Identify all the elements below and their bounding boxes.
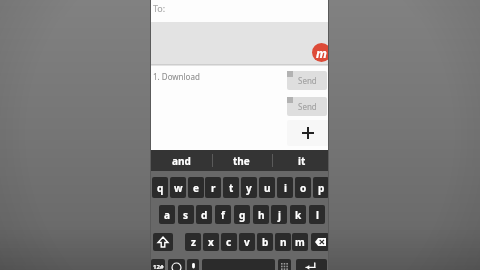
staticText: e	[193, 181, 199, 195]
staticText: p	[318, 181, 325, 195]
button[interactable]: h	[253, 205, 269, 224]
staticText: 1. Download	[153, 71, 200, 82]
button[interactable]: it	[281, 150, 323, 171]
button[interactable]: p	[313, 177, 329, 198]
button[interactable]: i	[277, 177, 293, 198]
button[interactable]	[153, 233, 173, 251]
button[interactable]: v	[239, 233, 255, 251]
button[interactable]	[168, 259, 185, 270]
staticText: and	[172, 154, 191, 168]
button[interactable]	[296, 259, 327, 270]
button[interactable]	[287, 120, 329, 146]
button[interactable]	[311, 233, 329, 251]
staticText: r	[211, 181, 216, 195]
button[interactable]: m	[312, 43, 329, 62]
button[interactable]: s	[178, 205, 194, 224]
staticText: it	[298, 154, 306, 168]
button[interactable]: a	[159, 205, 175, 224]
staticText: j	[278, 208, 281, 222]
button[interactable]: z	[185, 233, 201, 251]
button[interactable]: To:	[151, 0, 328, 22]
button[interactable]	[187, 259, 199, 270]
button[interactable]: q	[152, 177, 168, 198]
button[interactable]: e	[188, 177, 204, 198]
staticText: m	[316, 45, 327, 61]
staticText: Send	[298, 101, 317, 112]
staticText: z	[191, 235, 196, 249]
staticText: d	[201, 208, 208, 222]
staticText: q	[157, 181, 164, 195]
button[interactable]: Send	[287, 97, 327, 116]
button[interactable]: n	[275, 233, 291, 251]
staticText: k	[295, 208, 302, 222]
button[interactable]: t	[223, 177, 239, 198]
button[interactable]: k	[290, 205, 306, 224]
staticText: h	[258, 208, 265, 222]
staticText: b	[262, 235, 269, 249]
staticText: i	[284, 181, 287, 195]
staticText: n	[280, 235, 287, 249]
staticText: w	[174, 181, 183, 195]
button[interactable]: r	[205, 177, 221, 198]
button[interactable]: Send	[287, 71, 327, 90]
staticText: Send	[298, 75, 317, 86]
button[interactable]: y	[241, 177, 257, 198]
staticText: f	[221, 208, 225, 222]
button[interactable]: u	[259, 177, 275, 198]
button[interactable]: g	[234, 205, 250, 224]
button[interactable]: b	[257, 233, 273, 251]
button[interactable]: f	[215, 205, 231, 224]
staticText: x	[208, 235, 214, 249]
staticText: g	[239, 208, 246, 222]
staticText: t	[229, 181, 234, 195]
button[interactable]	[278, 259, 291, 270]
staticText: u	[264, 181, 271, 195]
button[interactable]: o	[295, 177, 311, 198]
button[interactable]: j	[271, 205, 287, 224]
staticText: v	[244, 235, 250, 249]
staticText: a	[164, 208, 170, 222]
button[interactable]: 12#	[151, 259, 165, 270]
button[interactable]: w	[170, 177, 186, 198]
button[interactable]: c	[221, 233, 237, 251]
button[interactable]: l	[309, 205, 325, 224]
button[interactable]: the	[220, 150, 262, 171]
staticText: l	[316, 208, 319, 222]
button[interactable]: x	[203, 233, 219, 251]
staticText: m	[295, 235, 305, 249]
staticText: c	[226, 235, 232, 249]
staticText: s	[183, 208, 189, 222]
staticText: o	[300, 181, 307, 195]
button[interactable]: and	[160, 150, 202, 171]
staticText: 12#	[153, 263, 164, 270]
staticText: To:	[153, 2, 166, 14]
button[interactable]: d	[196, 205, 212, 224]
staticText: y	[246, 181, 252, 195]
staticText: the	[233, 154, 250, 168]
button[interactable]: m	[292, 233, 308, 251]
